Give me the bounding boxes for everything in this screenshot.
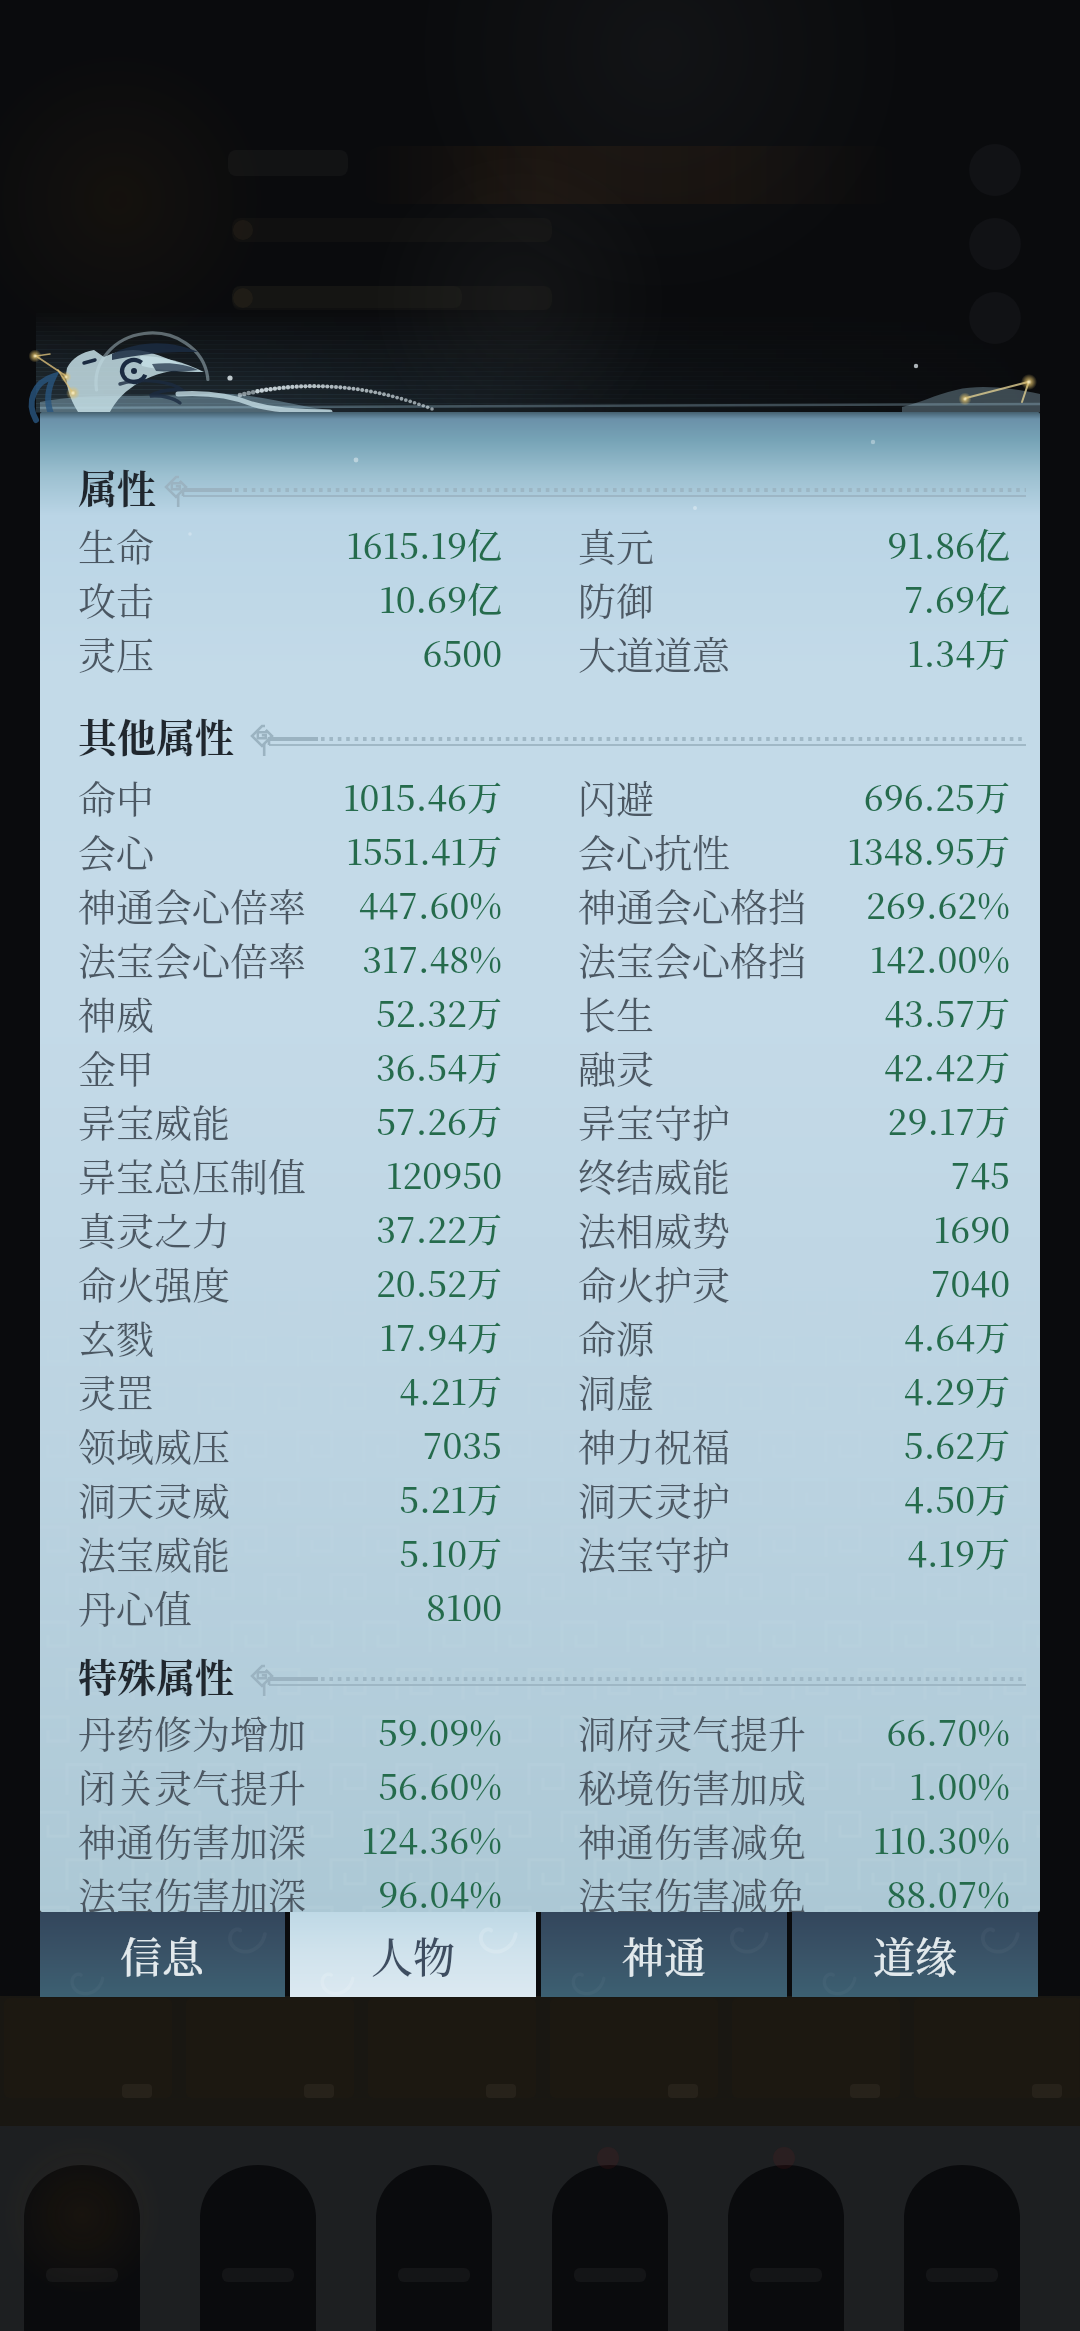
staticText: 1.00% [680, 1760, 1010, 1810]
staticText: 洞天灵威 [78, 1471, 231, 1525]
staticText: 4.19万 [680, 1527, 1010, 1577]
staticText: 信息 [120, 1925, 205, 1985]
staticText: 120950 [180, 1149, 502, 1199]
staticText: 异宝威能 [78, 1093, 231, 1147]
staticText: 5.62万 [680, 1419, 1010, 1469]
staticText: 4.64万 [680, 1311, 1010, 1361]
staticText: 会心 [78, 823, 155, 877]
staticText: 道缘 [873, 1925, 958, 1985]
staticText: 灵罡 [78, 1363, 155, 1417]
staticText: 317.48% [180, 933, 502, 983]
button[interactable]: 神通 [541, 1912, 787, 1997]
staticText: 696.25万 [680, 771, 1010, 821]
staticText: 447.60% [180, 879, 502, 929]
staticText: 闭关灵气提升 [78, 1758, 307, 1812]
button[interactable]: 道缘 [792, 1912, 1038, 1997]
staticText: 5.10万 [180, 1527, 502, 1577]
staticText: 终结威能 [578, 1147, 731, 1201]
staticText: 神力祝福 [578, 1417, 731, 1471]
staticText: 10.69亿 [180, 573, 502, 623]
staticText: 745 [680, 1149, 1010, 1199]
staticText: 丹心值 [78, 1579, 193, 1633]
staticText: 5.21万 [180, 1473, 502, 1523]
staticText: 灵压 [78, 625, 155, 679]
staticText: 1015.46万 [180, 771, 502, 821]
staticText: 生命 [78, 517, 155, 571]
staticText: 6500 [180, 627, 502, 677]
staticText: 攻击 [78, 571, 155, 625]
staticText: 洞虚 [578, 1363, 655, 1417]
staticText: 法宝会心格挡 [578, 931, 807, 985]
staticText: 大道道意 [578, 625, 731, 679]
staticText: 领域威压 [78, 1417, 231, 1471]
staticText: 神通伤害加深 [78, 1812, 307, 1866]
staticText: 法宝会心倍率 [78, 931, 307, 985]
staticText: 真元 [578, 517, 655, 571]
staticText: 异宝守护 [578, 1093, 731, 1147]
staticText: 4.21万 [180, 1365, 502, 1415]
staticText: 4.50万 [680, 1473, 1010, 1523]
staticText: 法相威势 [578, 1201, 731, 1255]
staticText: 其他属性 [78, 707, 235, 763]
staticText: 命中 [78, 769, 155, 823]
staticText: 4.29万 [680, 1365, 1010, 1415]
staticText: 7035 [180, 1419, 502, 1469]
staticText: 91.86亿 [680, 519, 1010, 569]
staticText: 124.36% [180, 1814, 502, 1864]
staticText: 43.57万 [680, 987, 1010, 1037]
staticText: 人物 [371, 1925, 456, 1985]
staticText: 8100 [180, 1581, 502, 1631]
staticText: 29.17万 [680, 1095, 1010, 1145]
staticText: 57.26万 [180, 1095, 502, 1145]
staticText: 丹药修为增加 [78, 1704, 307, 1758]
staticText: 神威 [78, 985, 155, 1039]
staticText: 神通会心格挡 [578, 877, 807, 931]
staticText: 秘境伤害加成 [578, 1758, 807, 1812]
staticText: 1348.95万 [680, 825, 1010, 875]
staticText: 神通伤害减免 [578, 1812, 807, 1866]
staticText: 玄戮 [78, 1309, 155, 1363]
staticText: 法宝威能 [78, 1525, 231, 1579]
staticText: 异宝总压制值 [78, 1147, 307, 1201]
staticText: 防御 [578, 571, 655, 625]
staticText: 长生 [578, 985, 655, 1039]
staticText: 法宝伤害加深 [78, 1866, 307, 1912]
staticText: 真灵之力 [78, 1201, 231, 1255]
staticText: 命火护灵 [578, 1255, 731, 1309]
staticText: 110.30% [680, 1814, 1010, 1864]
staticText: 法宝守护 [578, 1525, 731, 1579]
staticText: 神通 [622, 1925, 707, 1985]
staticText: 269.62% [680, 879, 1010, 929]
staticText: 37.22万 [180, 1203, 502, 1253]
staticText: 1690 [680, 1203, 1010, 1253]
staticText: 96.04% [180, 1868, 502, 1912]
staticText: 1.34万 [680, 627, 1010, 677]
staticText: 88.07% [680, 1868, 1010, 1912]
staticText: 金甲 [78, 1039, 155, 1093]
button[interactable]: 信息 [40, 1912, 285, 1997]
staticText: 1615.19亿 [180, 519, 502, 569]
staticText: 法宝伤害减免 [578, 1866, 807, 1912]
button[interactable]: 人物 [290, 1912, 536, 1997]
staticText: 特殊属性 [78, 1647, 235, 1703]
staticText: 洞府灵气提升 [578, 1704, 807, 1758]
staticText: 会心抗性 [578, 823, 731, 877]
staticText: 36.54万 [180, 1041, 502, 1091]
staticText: 42.42万 [680, 1041, 1010, 1091]
staticText: 56.60% [180, 1760, 502, 1810]
staticText: 142.00% [680, 933, 1010, 983]
staticText: 52.32万 [180, 987, 502, 1037]
staticText: 17.94万 [180, 1311, 502, 1361]
staticText: 洞天灵护 [578, 1471, 731, 1525]
staticText: 66.70% [680, 1706, 1010, 1756]
staticText: 属性 [78, 458, 157, 514]
staticText: 1551.41万 [180, 825, 502, 875]
staticText: 融灵 [578, 1039, 655, 1093]
staticText: 神通会心倍率 [78, 877, 307, 931]
staticText: 20.52万 [180, 1257, 502, 1307]
staticText: 命源 [578, 1309, 655, 1363]
staticText: 命火强度 [78, 1255, 231, 1309]
staticText: 7040 [680, 1257, 1010, 1307]
staticText: 59.09% [180, 1706, 502, 1756]
staticText: 7.69亿 [680, 573, 1010, 623]
